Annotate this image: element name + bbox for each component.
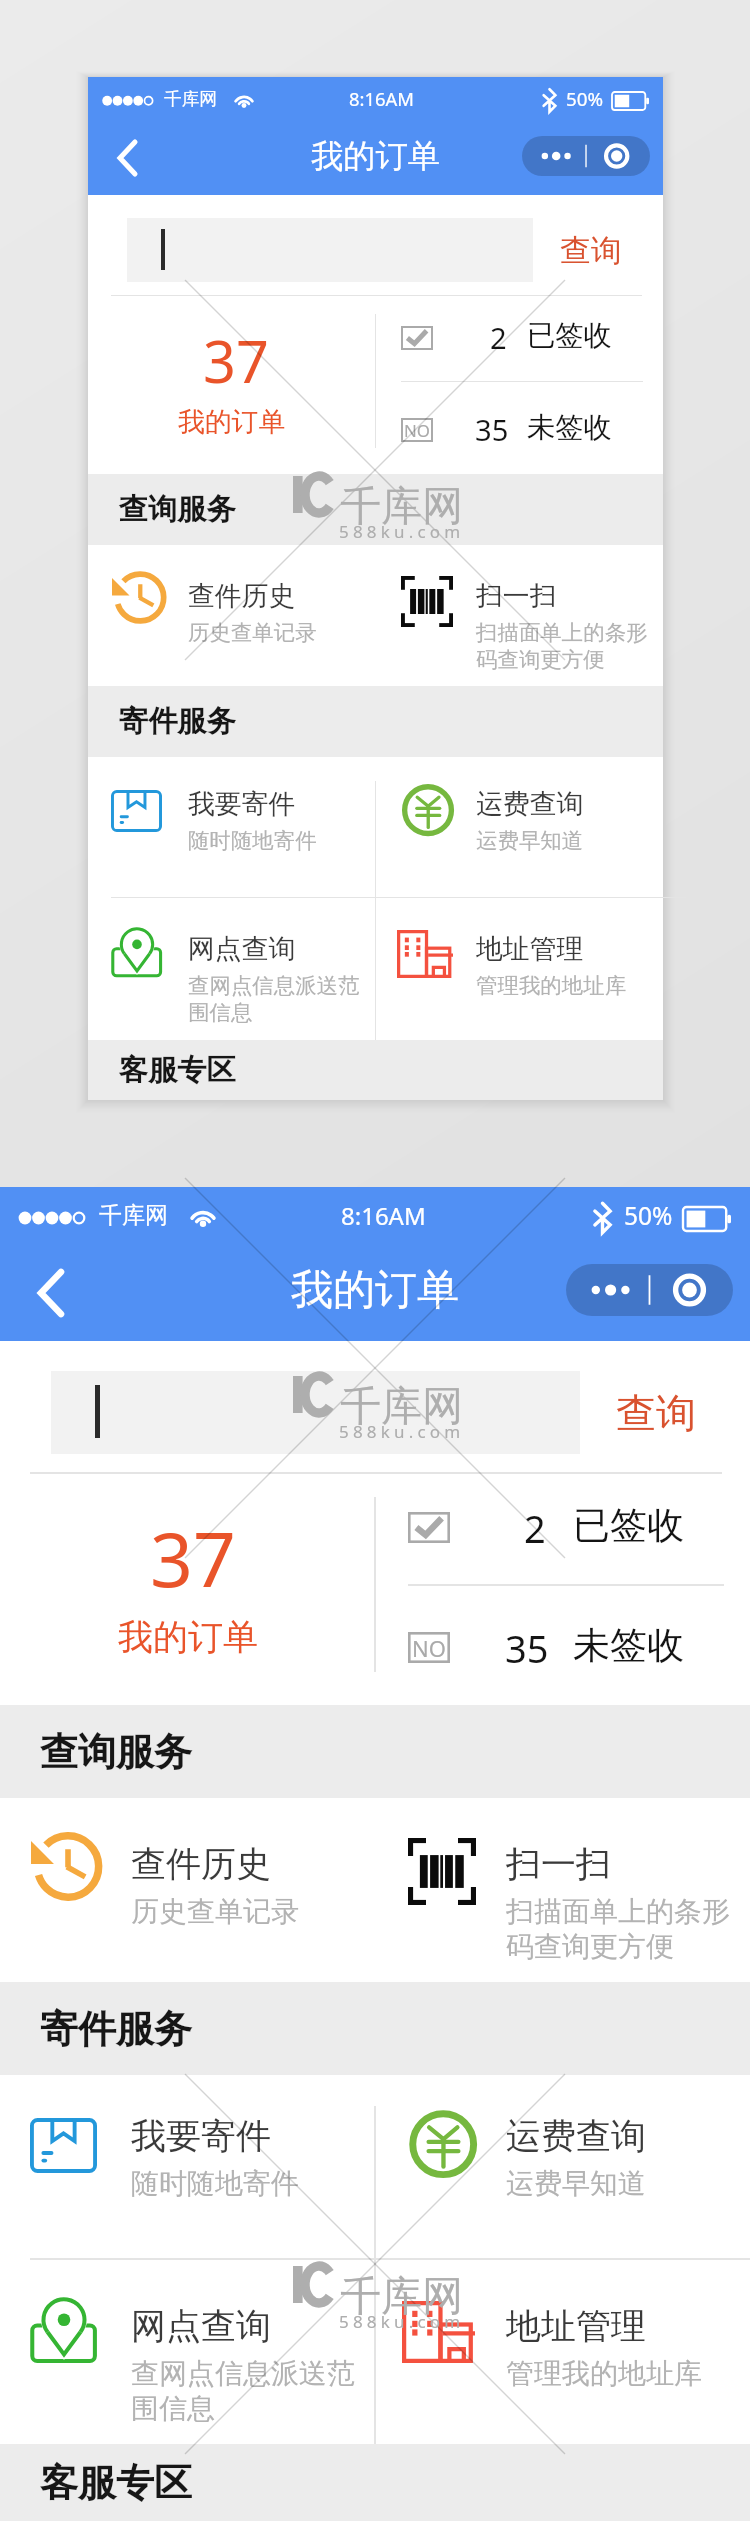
staticText: 查询 bbox=[616, 1388, 696, 1438]
staticText: 50% bbox=[624, 1199, 673, 1232]
staticText: 管理我的地址库 bbox=[506, 2356, 702, 2391]
staticText: 扫描面单上的条形 bbox=[506, 1894, 730, 1929]
staticText: 我的订单 bbox=[311, 136, 440, 177]
staticText: 2 bbox=[524, 1502, 546, 1554]
button[interactable] bbox=[376, 385, 664, 474]
staticText: 客服专区 bbox=[40, 2459, 192, 2507]
staticText: 运费查询 bbox=[476, 787, 584, 821]
staticText: NO bbox=[412, 1633, 446, 1663]
staticText: 35 bbox=[505, 1622, 549, 1674]
button[interactable]: Back bbox=[97, 129, 155, 195]
staticText: 8:16AM bbox=[341, 1199, 426, 1232]
staticText: 码查询更方便 bbox=[506, 1929, 674, 1964]
button[interactable]: 我要寄件 bbox=[0, 2075, 375, 2258]
staticText: 未签收 bbox=[573, 1622, 684, 1669]
button[interactable] bbox=[375, 1473, 750, 1589]
button[interactable]: 查件历史 bbox=[0, 1798, 375, 1982]
staticText: 随时随地寄件 bbox=[131, 2166, 299, 2201]
button[interactable]: More options and Close bbox=[522, 136, 650, 176]
staticText: 管理我的地址库 bbox=[476, 972, 627, 999]
staticText: 千库网 bbox=[164, 88, 217, 110]
staticText: 运费早知道 bbox=[506, 2166, 646, 2201]
staticText: 历史查单记录 bbox=[131, 1894, 299, 1929]
staticText: 地址管理 bbox=[476, 932, 584, 966]
staticText: 历史查单记录 bbox=[188, 619, 317, 646]
staticText: 围信息 bbox=[188, 999, 253, 1026]
staticText: 寄件服务 bbox=[40, 2005, 192, 2053]
staticText: 查询 bbox=[560, 231, 622, 270]
staticText: 千库网 bbox=[99, 1201, 168, 1230]
staticText: 寄件服务 bbox=[119, 703, 236, 740]
button[interactable] bbox=[51, 1371, 580, 1454]
button[interactable]: 网点查询 bbox=[0, 2258, 375, 2444]
staticText: 已签收 bbox=[527, 318, 613, 354]
staticText: 扫一扫 bbox=[506, 1842, 611, 1886]
staticText: 扫描面单上的条形 bbox=[476, 619, 648, 646]
button[interactable] bbox=[127, 218, 533, 282]
staticText: 我的订单 bbox=[118, 1615, 258, 1659]
button[interactable]: 扫一扫 bbox=[375, 1798, 750, 1982]
staticText: 随时随地寄件 bbox=[188, 827, 317, 854]
staticText: 588ku.com bbox=[339, 2310, 465, 2333]
staticText: 千库网 bbox=[340, 1381, 463, 1433]
staticText: 我的订单 bbox=[291, 1264, 459, 1317]
staticText: 588ku.com bbox=[339, 1420, 465, 1443]
staticText: 588ku.com bbox=[339, 520, 465, 543]
staticText: 未签收 bbox=[527, 410, 613, 446]
staticText: 码查询更方便 bbox=[476, 646, 605, 673]
button[interactable]: 地址管理 bbox=[375, 2258, 750, 2444]
button[interactable] bbox=[375, 1589, 750, 1705]
staticText: 千库网 bbox=[340, 481, 463, 533]
staticText: 查询服务 bbox=[40, 1728, 192, 1776]
button[interactable]: 查询 bbox=[604, 1371, 708, 1454]
button[interactable]: 扫一扫 bbox=[376, 545, 664, 686]
button[interactable]: 地址管理 bbox=[376, 897, 664, 1040]
button[interactable] bbox=[376, 296, 664, 385]
staticText: 2 bbox=[490, 318, 507, 358]
staticText: 我要寄件 bbox=[188, 787, 296, 821]
staticText: 8:16AM bbox=[349, 86, 414, 111]
staticText: 网点查询 bbox=[131, 2304, 271, 2348]
button[interactable]: 运费查询 bbox=[376, 757, 664, 897]
button[interactable]: 37 bbox=[88, 296, 376, 474]
staticText: 查件历史 bbox=[188, 579, 296, 613]
staticText: 查网点信息派送范 bbox=[131, 2356, 355, 2391]
staticText: 千库网 bbox=[340, 2271, 463, 2323]
button[interactable]: 我要寄件 bbox=[88, 757, 376, 897]
staticText: 37 bbox=[203, 322, 269, 400]
button[interactable]: 运费查询 bbox=[375, 2075, 750, 2258]
staticText: 37 bbox=[150, 1507, 236, 1609]
staticText: 运费早知道 bbox=[476, 827, 584, 854]
staticText: 50% bbox=[566, 86, 604, 112]
button[interactable]: 网点查询 bbox=[88, 897, 376, 1040]
staticText: 围信息 bbox=[131, 2391, 215, 2426]
staticText: 我的订单 bbox=[178, 405, 286, 439]
staticText: NO bbox=[404, 419, 430, 442]
staticText: 客服专区 bbox=[119, 1052, 236, 1089]
staticText: 查件历史 bbox=[131, 1842, 271, 1886]
staticText: 我要寄件 bbox=[131, 2114, 271, 2158]
staticText: 网点查询 bbox=[188, 932, 296, 966]
staticText: 地址管理 bbox=[506, 2304, 646, 2348]
staticText: 查询服务 bbox=[119, 491, 236, 528]
button[interactable]: 查件历史 bbox=[88, 545, 376, 686]
button[interactable]: More options and Close bbox=[566, 1264, 733, 1316]
staticText: 查网点信息派送范 bbox=[188, 972, 360, 999]
staticText: 35 bbox=[475, 410, 509, 450]
staticText: 扫一扫 bbox=[476, 579, 557, 613]
button[interactable]: 37 bbox=[0, 1473, 375, 1705]
button[interactable]: Back bbox=[12, 1255, 88, 1341]
button[interactable]: 查询 bbox=[551, 218, 631, 282]
staticText: 运费查询 bbox=[506, 2114, 646, 2158]
staticText: 已签收 bbox=[573, 1502, 684, 1549]
